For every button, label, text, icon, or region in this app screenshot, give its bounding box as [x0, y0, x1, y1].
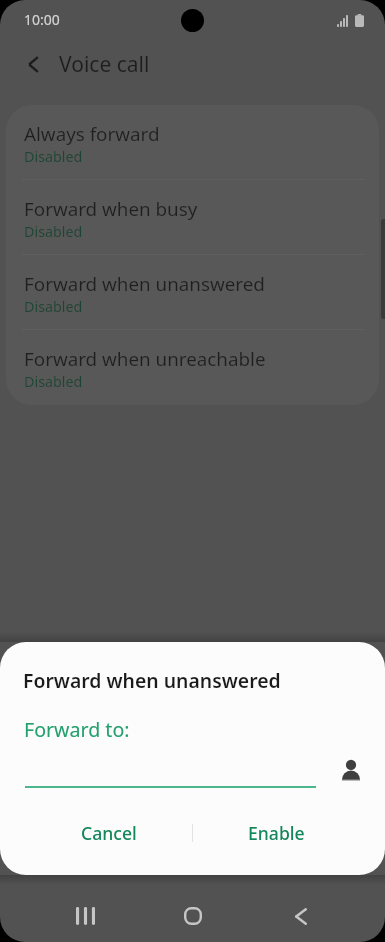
button[interactable]: Back — [277, 892, 325, 940]
button[interactable]: Recent apps — [61, 892, 109, 940]
staticText: Disabled — [24, 147, 83, 166]
button[interactable]: Forward when busy — [6, 180, 379, 255]
staticText: Forward when busy — [24, 196, 198, 222]
button[interactable]: Cancel — [26, 810, 192, 856]
button[interactable]: Home — [169, 892, 217, 940]
staticText: Disabled — [24, 372, 83, 391]
button[interactable]: Forward when unreachable — [6, 330, 379, 405]
staticText: Disabled — [24, 222, 83, 241]
staticText: Cancel — [81, 821, 137, 845]
staticText: Disabled — [24, 297, 83, 316]
button[interactable]: Choose contact — [332, 752, 369, 789]
staticText: Forward when unanswered — [23, 667, 281, 693]
button[interactable]: Navigate up — [14, 45, 52, 83]
staticText: Always forward — [24, 121, 160, 147]
button[interactable]: Always forward — [6, 105, 379, 180]
staticText: Forward when unanswered — [24, 271, 265, 297]
staticText: 10:00 — [24, 10, 60, 29]
button[interactable]: Forward when unanswered — [6, 255, 379, 330]
staticText: Enable — [248, 821, 305, 845]
staticText: Voice call — [59, 50, 150, 79]
staticText: Forward when unreachable — [24, 346, 266, 372]
button[interactable]: Enable — [193, 810, 359, 856]
staticText: Forward to: — [24, 716, 130, 743]
